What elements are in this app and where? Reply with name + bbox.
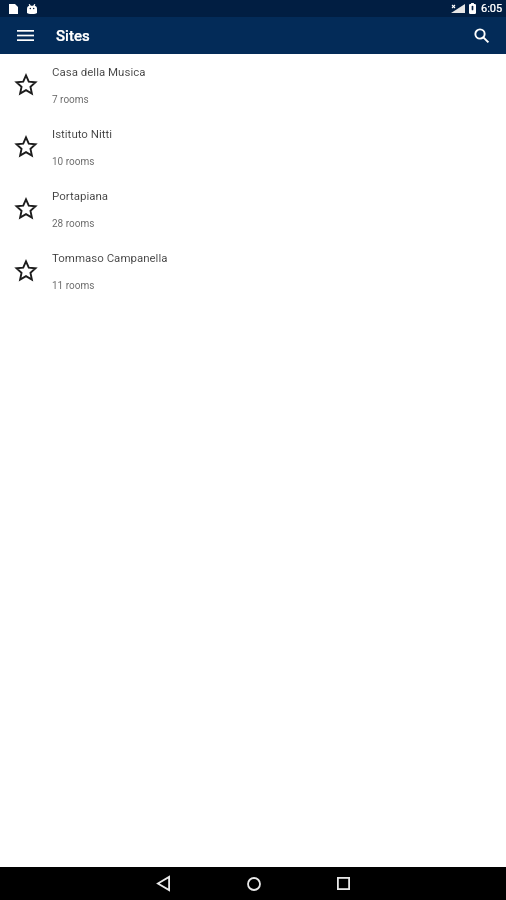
button[interactable]: Back bbox=[143, 867, 184, 900]
staticText: 6:05 bbox=[481, 2, 503, 15]
staticText: Sites bbox=[56, 27, 90, 45]
staticText: 11 rooms bbox=[52, 280, 95, 292]
button[interactable]: Recent apps bbox=[323, 867, 364, 900]
button[interactable]: Home bbox=[233, 867, 274, 900]
button[interactable]: Istituto Nitti bbox=[0, 116, 506, 178]
staticText: Portapiana bbox=[52, 189, 109, 202]
staticText: Tommaso Campanella bbox=[52, 251, 168, 264]
button[interactable]: Search bbox=[461, 17, 502, 54]
button[interactable]: Tommaso Campanella bbox=[0, 240, 506, 302]
button[interactable]: Casa della Musica bbox=[0, 54, 506, 116]
staticText: 7 rooms bbox=[52, 94, 89, 106]
button[interactable]: Open navigation menu bbox=[5, 17, 46, 54]
staticText: 28 rooms bbox=[52, 218, 95, 230]
staticText: Istituto Nitti bbox=[52, 127, 113, 140]
button[interactable]: Portapiana bbox=[0, 178, 506, 240]
staticText: 10 rooms bbox=[52, 156, 95, 168]
staticText: Casa della Musica bbox=[52, 65, 146, 78]
